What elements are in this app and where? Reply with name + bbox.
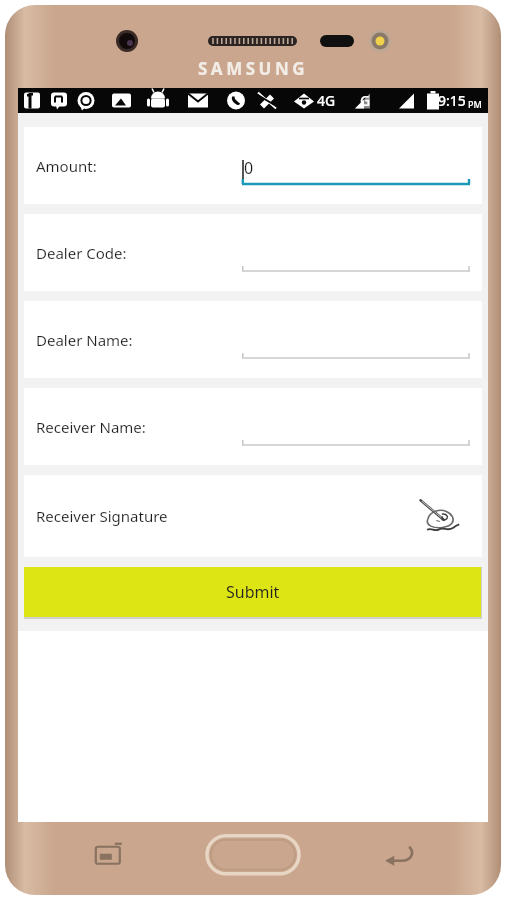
- staticText: Amount:: [36, 156, 97, 176]
- staticText: Receiver Name:: [36, 417, 146, 437]
- staticText: SAMSUNG: [198, 57, 309, 80]
- button[interactable]: Submit: [24, 567, 481, 617]
- staticText: 4G: [317, 91, 336, 110]
- staticText: 9:15: [438, 91, 466, 110]
- staticText: PM: [468, 98, 482, 110]
- staticText: Receiver Signature: [36, 506, 168, 526]
- staticText: G: [360, 91, 371, 110]
- staticText: Submit: [226, 581, 280, 603]
- button[interactable]: Amount:: [24, 127, 482, 204]
- staticText: Dealer Name:: [36, 330, 133, 350]
- button[interactable]: Dealer Name:: [24, 301, 482, 378]
- button[interactable]: Receiver Name:: [24, 388, 482, 465]
- button[interactable]: Receiver Signature: [24, 475, 482, 557]
- staticText: 0: [244, 157, 254, 179]
- staticText: Dealer Code:: [36, 243, 127, 263]
- button[interactable]: Dealer Code:: [24, 214, 482, 291]
